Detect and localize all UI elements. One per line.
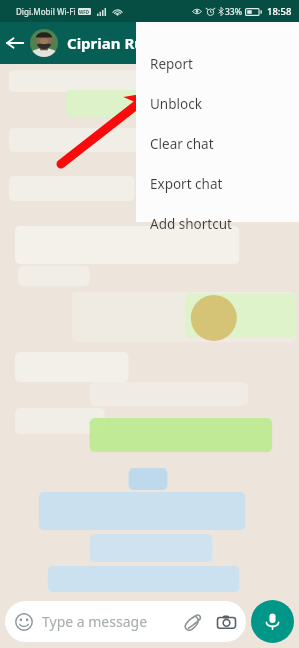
staticText: Add shortcut <box>150 215 232 233</box>
button[interactable]: Emoji <box>5 601 246 642</box>
staticText: Type a message <box>42 612 148 631</box>
button[interactable]: Add shortcut <box>136 204 299 244</box>
staticText: Digi.Mobil Wi-Fi <box>16 6 76 17</box>
staticText: Report <box>150 55 193 73</box>
staticText: Ciprian Rus <box>67 33 152 53</box>
button[interactable]: Camera <box>215 611 237 633</box>
button[interactable]: Contact photo <box>30 29 58 57</box>
button[interactable]: Emoji <box>14 612 34 632</box>
staticText: WFD <box>79 9 90 15</box>
staticText: Clear chat <box>150 135 214 153</box>
button[interactable]: Export chat <box>136 164 299 204</box>
button[interactable]: Unblock <box>136 84 299 124</box>
staticText: 18:58 <box>267 5 292 18</box>
button[interactable]: Voice message <box>251 600 294 643</box>
staticText: Unblock <box>150 95 202 113</box>
button[interactable]: Clear chat <box>136 124 299 164</box>
staticText: 33% <box>225 6 242 18</box>
staticText: Export chat <box>150 175 223 193</box>
button[interactable]: Back <box>2 30 28 56</box>
button[interactable]: Attach <box>181 611 203 633</box>
button[interactable]: Report <box>136 44 299 84</box>
